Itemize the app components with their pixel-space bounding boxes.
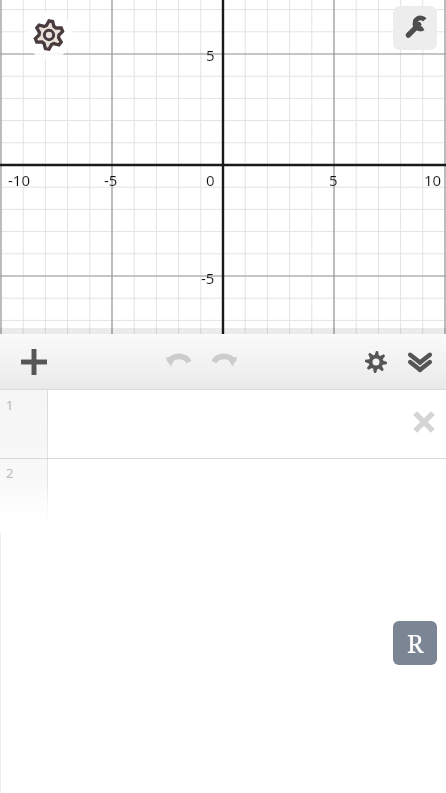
button[interactable]: Tools [393, 6, 437, 50]
staticText: 5 [329, 170, 338, 190]
staticText: -5 [104, 170, 118, 190]
staticText: 5 [206, 45, 215, 65]
staticText: 0 [206, 170, 215, 190]
staticText: 1 [6, 396, 14, 414]
staticText: R [407, 626, 424, 660]
button[interactable]: Redo [200, 338, 248, 386]
button[interactable]: Settings [352, 338, 400, 386]
staticText: -5 [201, 268, 215, 288]
staticText: 10 [424, 170, 442, 190]
button[interactable]: Delete expression [402, 400, 446, 444]
button[interactable]: Collapse [396, 338, 444, 386]
staticText: 2 [6, 464, 14, 482]
button[interactable]: Keyboard [393, 621, 437, 665]
button[interactable]: Add expression [6, 334, 62, 390]
button[interactable]: Graph settings [25, 11, 73, 59]
button[interactable]: Undo [155, 338, 203, 386]
staticText: -10 [8, 170, 30, 190]
